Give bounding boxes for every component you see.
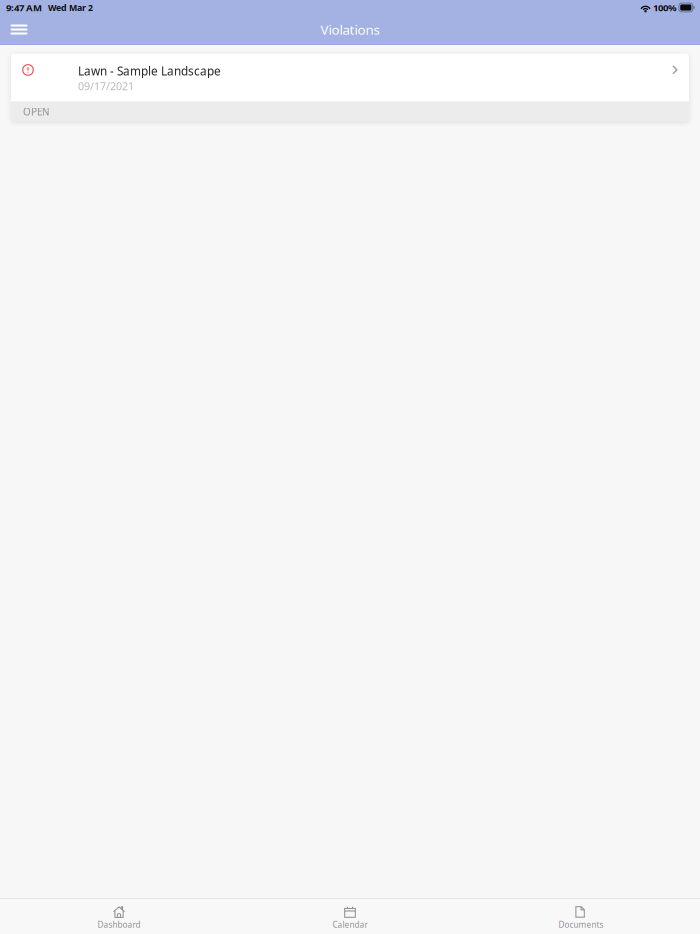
staticText: 09/17/2021 xyxy=(78,79,134,93)
button[interactable]: Lawn - Sample Landscape xyxy=(11,54,689,102)
button[interactable]: Calendar xyxy=(234,899,465,934)
button[interactable]: Dashboard xyxy=(3,899,234,934)
button[interactable]: Documents xyxy=(465,899,696,934)
staticText: Violations xyxy=(320,20,379,39)
staticText: 100% xyxy=(651,1,677,14)
staticText: 9:47 AM xyxy=(6,1,42,14)
staticText: Lawn - Sample Landscape xyxy=(78,63,221,79)
staticText: Documents xyxy=(558,919,603,930)
staticText: Dashboard xyxy=(97,919,140,930)
staticText: Wed Mar 2 xyxy=(42,1,93,13)
button[interactable]: Menu xyxy=(2,15,36,44)
staticText: OPEN xyxy=(23,105,49,118)
staticText: Calendar xyxy=(332,919,367,930)
